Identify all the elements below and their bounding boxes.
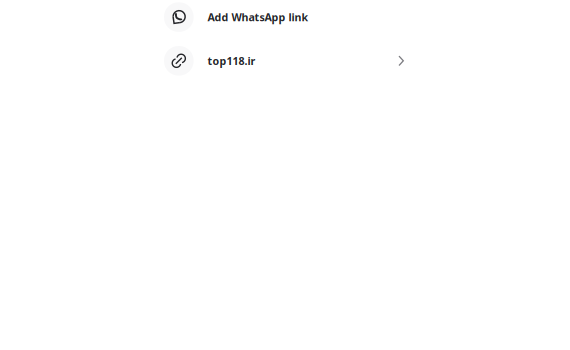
- staticText: top118.ir: [208, 54, 256, 68]
- staticText: Add WhatsApp link: [208, 10, 309, 24]
- button[interactable]: top118.ir: [164, 45, 404, 76]
- button[interactable]: Add WhatsApp link: [164, 2, 404, 33]
